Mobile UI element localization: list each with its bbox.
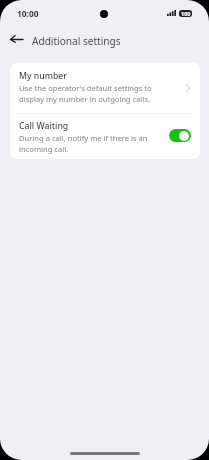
staticText: 10:00 [17,8,39,19]
staticText: During a call, notify me if there is an … [19,133,155,154]
button[interactable]: Call Waiting [10,113,200,159]
button[interactable]: My number [10,63,200,113]
staticText: My number [19,70,67,82]
button[interactable]: Back [4,27,28,51]
staticText: 100 [181,10,191,17]
button[interactable]: Call waiting toggle [169,129,191,142]
staticText: Additional settings [32,34,121,48]
staticText: Call Waiting [19,120,69,132]
staticText: Use the operator's default settings to d… [19,83,155,104]
